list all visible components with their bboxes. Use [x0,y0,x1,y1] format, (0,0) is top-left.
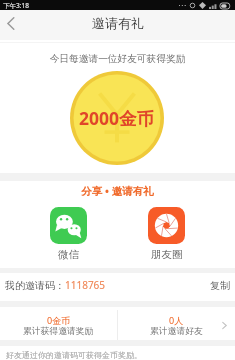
staticText: 今日每邀请一位好友可获得奖励 [0,53,235,65]
staticText: 分享 • 邀请有礼 [0,184,235,198]
button[interactable]: Back [0,10,21,36]
staticText: 下午3:18 [3,1,29,10]
staticText: 好友通过你的邀请码可获得金币奖励。 [6,350,142,360]
staticText: 0金币 [47,314,71,326]
button[interactable]: 0人 [118,308,235,342]
button[interactable]: 微信 [50,207,87,261]
staticText: 微信 [58,248,79,261]
button[interactable]: 朋友圈 [148,207,185,261]
staticText: 朋友圈 [151,248,183,261]
button[interactable]: 0金币 [0,308,117,342]
staticText: 邀请有礼 [92,15,144,31]
staticText: 复制 [210,279,230,292]
staticText: 我的邀请码： [5,279,65,292]
staticText: 累计邀请好友 [150,326,203,337]
staticText: 2000金币 [79,106,155,130]
button[interactable]: 我的邀请码： [0,270,235,300]
staticText: 累计获得邀请奖励 [23,326,94,337]
staticText: ⋯ [178,1,186,10]
staticText: 0人 [169,314,184,326]
staticText: 1118765 [65,278,106,292]
